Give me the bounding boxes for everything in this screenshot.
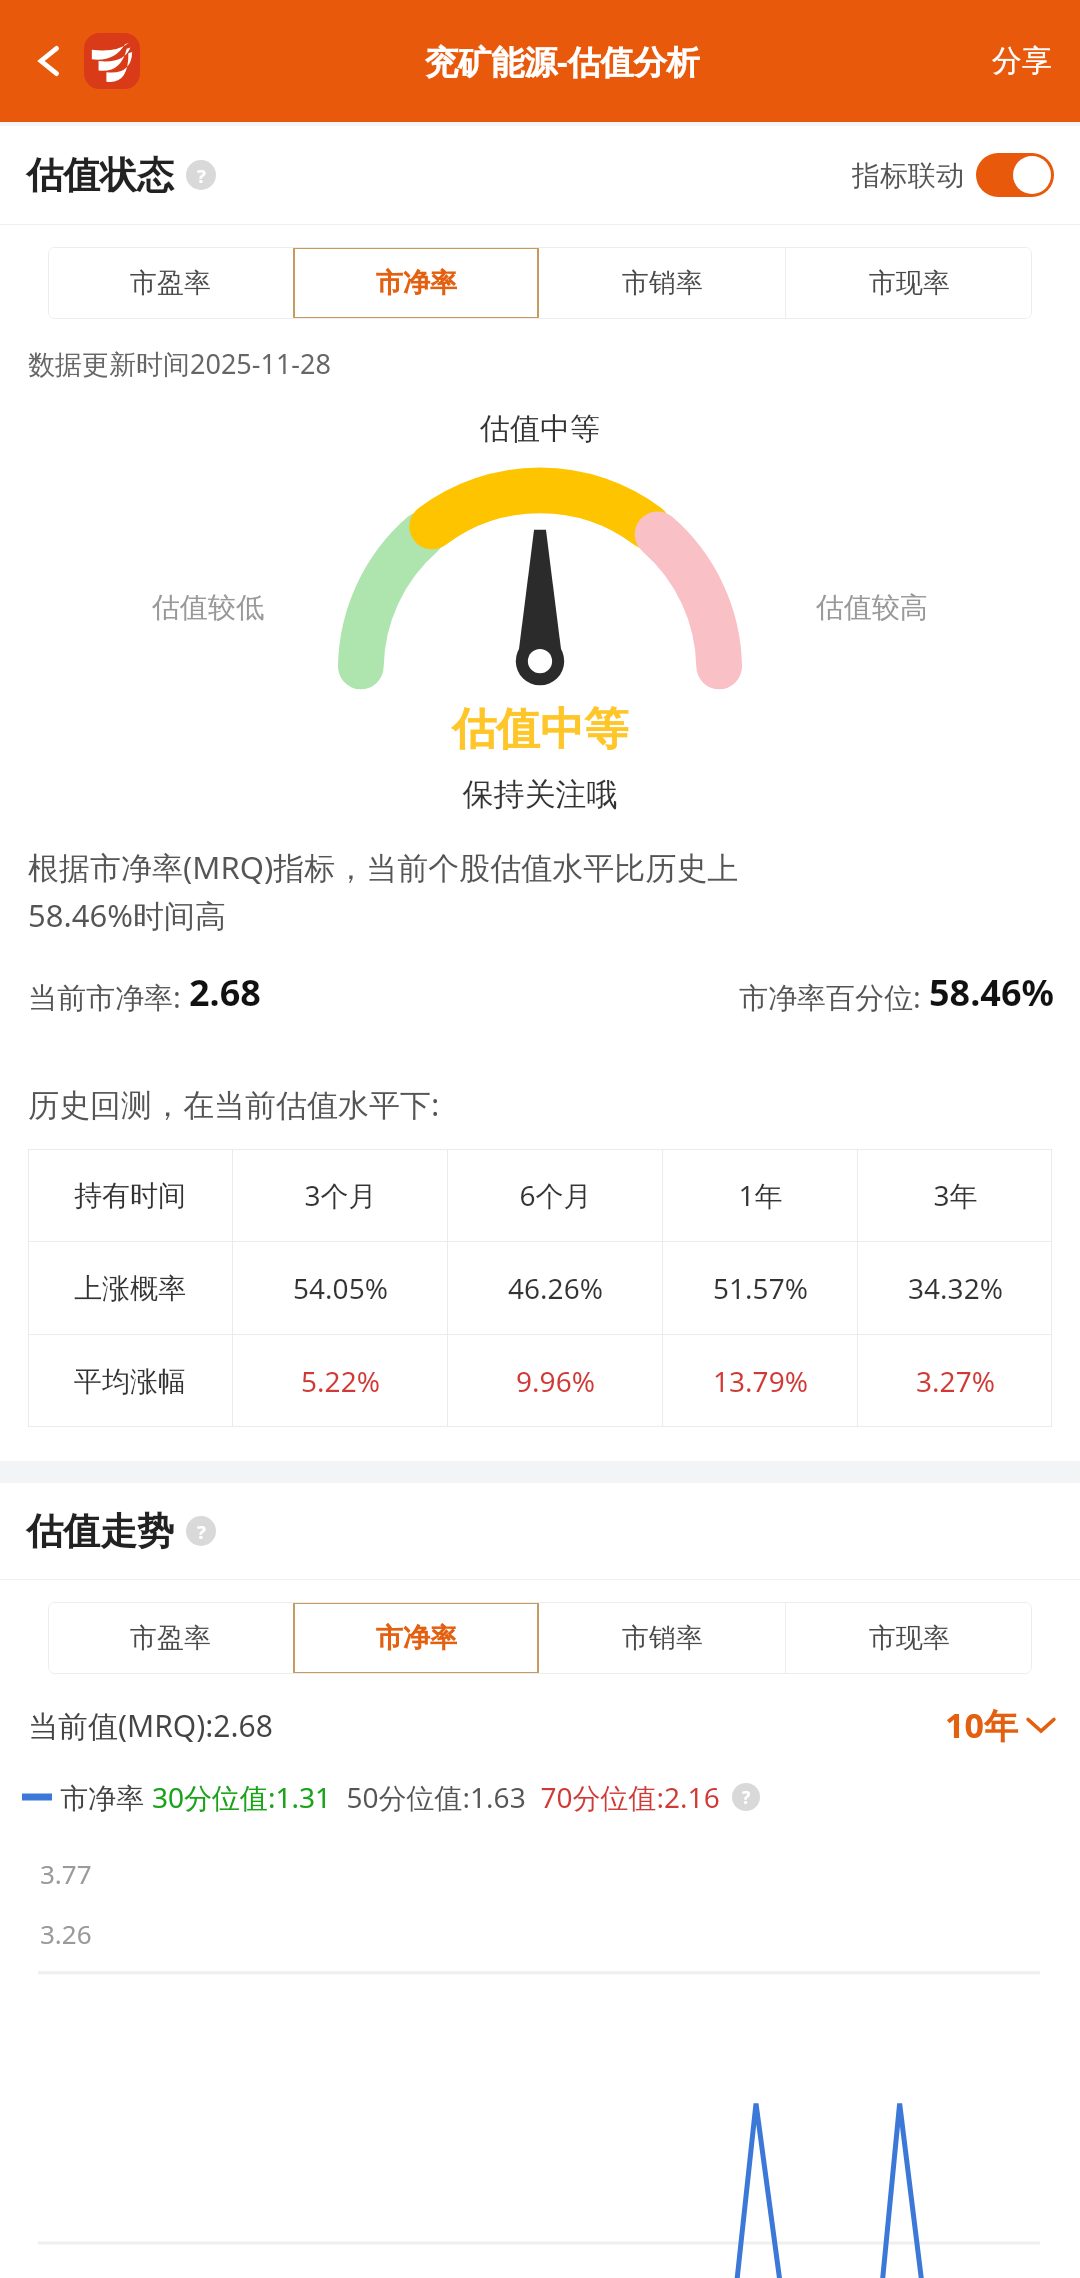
staticText: 估值走势 bbox=[26, 1508, 174, 1555]
staticText: 30分位值:1.31 bbox=[152, 1778, 332, 1816]
staticText: 上涨概率 bbox=[74, 1271, 186, 1306]
button[interactable]: 市净率 bbox=[293, 1602, 539, 1674]
staticText: ? bbox=[197, 163, 206, 188]
staticText: 2.68 bbox=[189, 968, 261, 1017]
staticText: 51.57% bbox=[713, 1269, 808, 1307]
button[interactable]: 市净率 bbox=[293, 247, 539, 319]
staticText: 1年 bbox=[738, 1176, 783, 1214]
staticText: 估值中等 bbox=[0, 410, 1080, 448]
staticText: 持有时间 bbox=[74, 1178, 186, 1213]
staticText: 估值较低 bbox=[152, 590, 264, 625]
staticText: 兖矿能源-估值分析 bbox=[425, 39, 700, 84]
staticText: 指标联动 bbox=[852, 158, 964, 193]
staticText: 10年 bbox=[945, 1702, 1018, 1748]
staticText: 3年 bbox=[933, 1176, 978, 1214]
staticText: 市净率 bbox=[376, 266, 457, 300]
staticText: 6个月 bbox=[519, 1176, 592, 1214]
staticText: 估值状态 bbox=[26, 152, 174, 199]
staticText: 市净率 bbox=[60, 1778, 152, 1816]
staticText: 3.27% bbox=[916, 1362, 995, 1400]
staticText: 9.96% bbox=[516, 1362, 595, 1400]
staticText: 3.26 bbox=[40, 1916, 92, 1951]
staticText: 当前市净率: bbox=[28, 977, 189, 1017]
button[interactable]: Help bbox=[186, 1516, 216, 1546]
button[interactable]: App logo bbox=[84, 33, 140, 89]
staticText: ? bbox=[197, 1519, 206, 1544]
staticText: 市盈率 bbox=[130, 266, 211, 300]
staticText: 市净率 bbox=[376, 1621, 457, 1655]
staticText: 根据市净率(MRQ)指标，当前个股估值水平比历史上 bbox=[28, 846, 739, 888]
staticText: 市现率 bbox=[869, 266, 950, 300]
staticText: 58.46%时间高 bbox=[28, 894, 226, 936]
staticText: 58.46% bbox=[929, 968, 1054, 1017]
button[interactable]: Help bbox=[186, 160, 216, 190]
button[interactable]: 市现率 bbox=[786, 1602, 1032, 1674]
staticText: ? bbox=[742, 1785, 751, 1809]
staticText: 70分位值:2.16 bbox=[526, 1778, 720, 1816]
button[interactable]: Back bbox=[22, 33, 78, 89]
staticText: 当前值(MRQ):2.68 bbox=[28, 1705, 273, 1746]
staticText: 50分位值:1.63 bbox=[332, 1778, 526, 1816]
staticText: 46.26% bbox=[508, 1269, 603, 1307]
staticText: 分享 bbox=[992, 42, 1052, 80]
button[interactable]: 指标联动 bbox=[852, 153, 1054, 197]
staticText: 54.05% bbox=[293, 1269, 388, 1307]
staticText: 市盈率 bbox=[130, 1621, 211, 1655]
staticText: 3个月 bbox=[304, 1176, 377, 1214]
button[interactable]: 10年 bbox=[945, 1702, 1054, 1748]
button[interactable]: 市销率 bbox=[539, 1602, 785, 1674]
staticText: 34.32% bbox=[908, 1269, 1003, 1307]
staticText: 数据更新时间2025-11-28 bbox=[28, 345, 331, 382]
button[interactable]: 市盈率 bbox=[48, 1602, 293, 1674]
staticText: 保持关注哦 bbox=[0, 775, 1080, 814]
staticText: 13.79% bbox=[713, 1362, 808, 1400]
button[interactable]: 市销率 bbox=[539, 247, 785, 319]
staticText: 估值较高 bbox=[816, 590, 928, 625]
staticText: 市现率 bbox=[869, 1621, 950, 1655]
staticText: 历史回测，在当前估值水平下: bbox=[28, 1083, 440, 1125]
button[interactable]: 市盈率 bbox=[48, 247, 293, 319]
staticText: 市销率 bbox=[622, 266, 703, 300]
staticText: 3.77 bbox=[40, 1856, 92, 1891]
button[interactable]: 分享 bbox=[986, 34, 1058, 88]
staticText: 平均涨幅 bbox=[74, 1364, 186, 1399]
button[interactable]: 市现率 bbox=[786, 247, 1032, 319]
staticText: 市净率百分位: bbox=[739, 977, 929, 1017]
button[interactable]: Help bbox=[732, 1783, 760, 1811]
staticText: 市销率 bbox=[622, 1621, 703, 1655]
staticText: 5.22% bbox=[301, 1362, 380, 1400]
staticText: 估值中等 bbox=[0, 702, 1080, 757]
